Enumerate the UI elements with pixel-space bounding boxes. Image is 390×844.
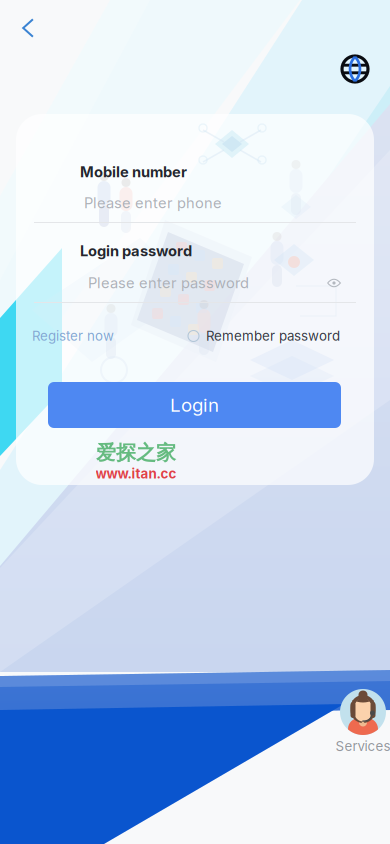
button[interactable]: Language bbox=[337, 51, 373, 87]
staticText: Please enter phone bbox=[84, 194, 222, 212]
button[interactable]: Remember password bbox=[188, 326, 358, 346]
staticText: Register now bbox=[32, 328, 114, 344]
button[interactable]: Services bbox=[335, 689, 390, 761]
staticText: Login password bbox=[80, 242, 192, 260]
staticText: Please enter password bbox=[88, 274, 249, 292]
staticText: Services bbox=[335, 738, 390, 754]
button[interactable]: Show password bbox=[320, 271, 348, 295]
staticText: Remember password bbox=[206, 328, 340, 344]
button[interactable]: Register now bbox=[32, 326, 132, 346]
staticText: Mobile number bbox=[80, 163, 187, 181]
staticText: www.itan.cc bbox=[95, 465, 176, 482]
staticText: 爱探之家 bbox=[96, 440, 176, 465]
staticText: Login bbox=[170, 394, 219, 416]
button[interactable]: Back bbox=[10, 10, 46, 46]
button[interactable]: Login bbox=[48, 382, 341, 428]
